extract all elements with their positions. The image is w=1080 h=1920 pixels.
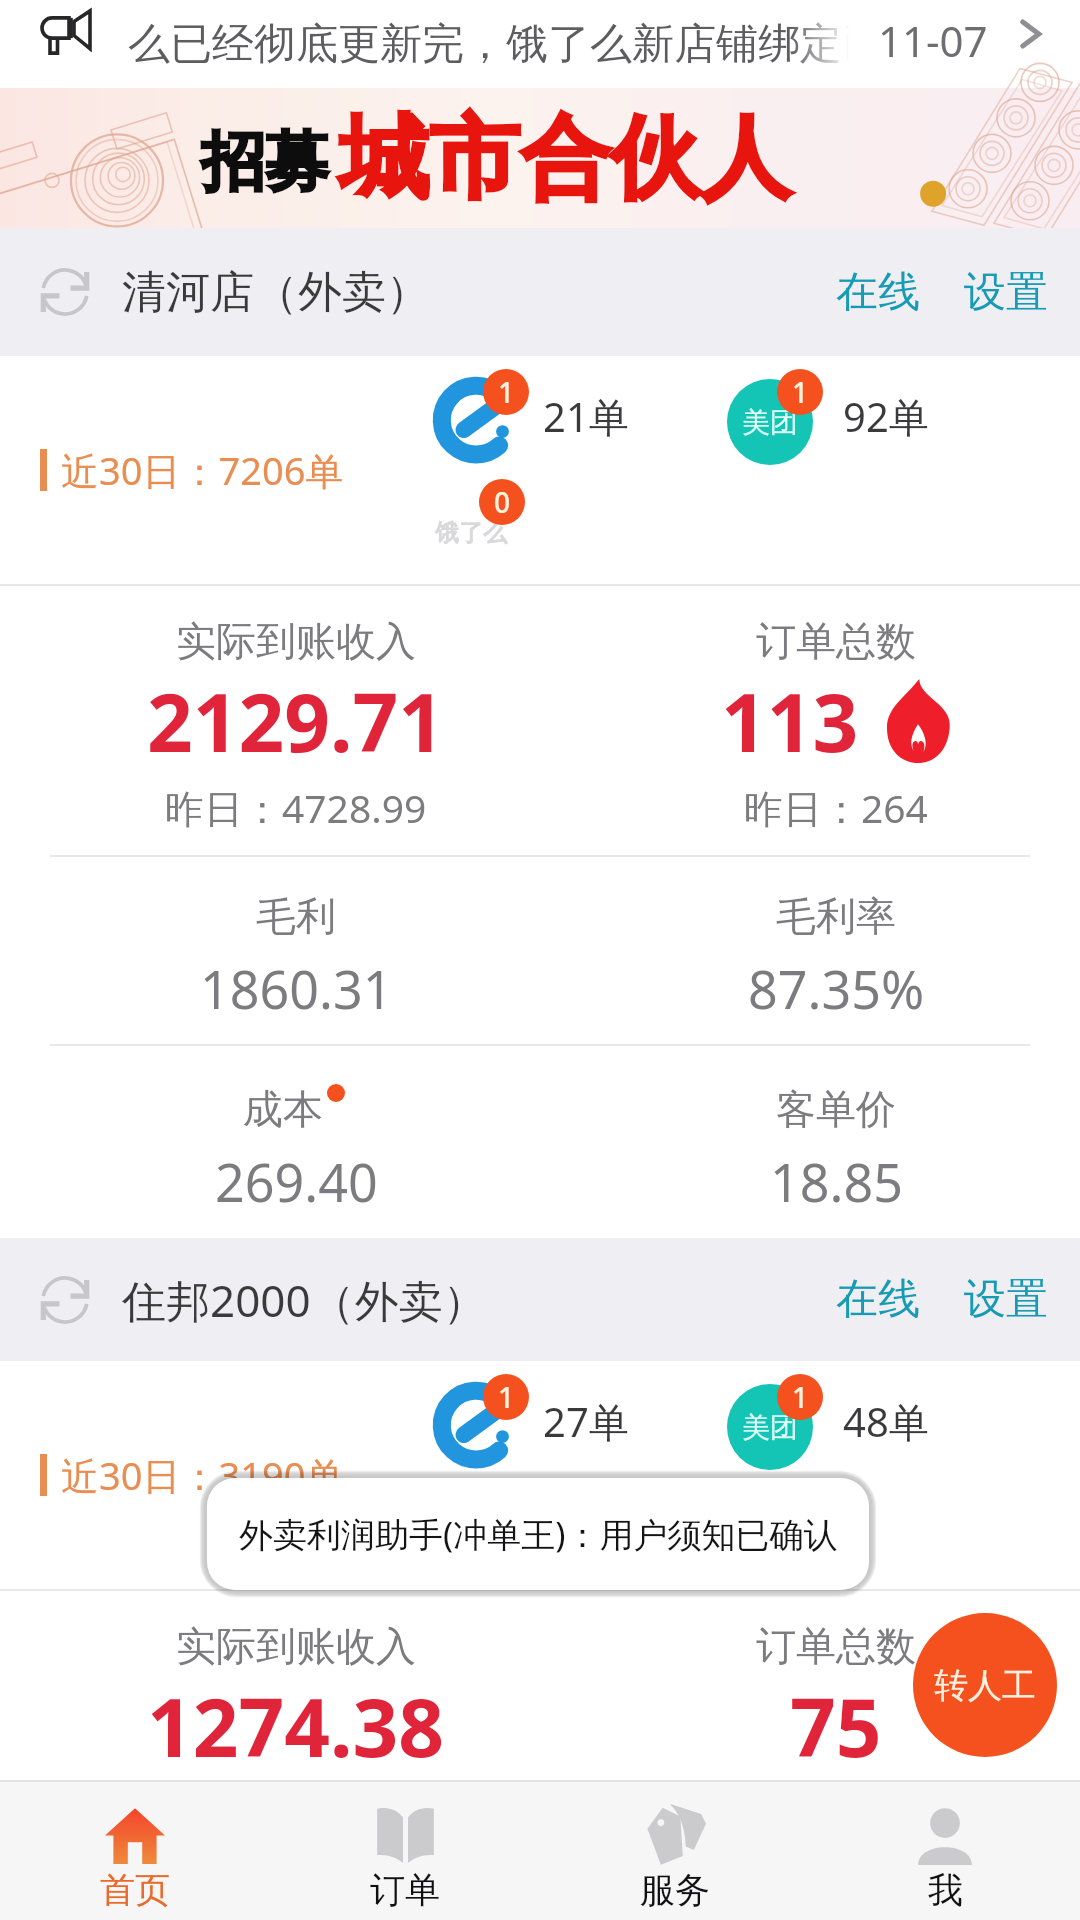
staticText: 订单总数 xyxy=(756,616,916,666)
staticText: 87.35% xyxy=(748,953,925,1024)
staticText: 近30日：7206单 xyxy=(61,444,344,496)
staticText: 么已经彻底更新完，饿了么新店铺绑定已绑定 xyxy=(128,18,850,71)
staticText: 首页 xyxy=(100,1868,170,1912)
staticText: 毛利率 xyxy=(776,891,896,941)
staticText: 269.40 xyxy=(215,1146,378,1217)
staticText: 美团 xyxy=(742,1410,798,1445)
staticText: 近30日：3190单 xyxy=(61,1449,344,1501)
staticText: 外卖利润助手(冲单王)：用户须知已确认 xyxy=(239,1511,838,1557)
staticText: 21单 xyxy=(543,389,629,444)
button[interactable]: Profile xyxy=(810,1782,1080,1920)
staticText: 实际到账收入 xyxy=(176,616,416,666)
staticText: 城市合伙人 xyxy=(339,102,792,215)
staticText: 美团 xyxy=(742,405,798,440)
staticText: 48单 xyxy=(843,1394,929,1449)
button[interactable]: 设置 xyxy=(958,258,1054,327)
staticText: 113 xyxy=(721,666,859,775)
staticText: 饿了么 xyxy=(435,518,507,548)
button[interactable]: 么已经彻底更新完，饿了么新店铺绑定已绑定 xyxy=(0,0,1080,88)
staticText: 订单总数 xyxy=(756,1621,916,1671)
staticText: 在线 xyxy=(836,1273,920,1326)
staticText: 毛利 xyxy=(256,891,336,941)
staticText: 92单 xyxy=(843,389,929,444)
staticText: 75 xyxy=(790,1671,882,1780)
button[interactable]: 招募 xyxy=(0,88,1080,228)
staticText: 设置 xyxy=(964,266,1048,319)
other: Open notice xyxy=(1010,14,1050,54)
button[interactable]: Home xyxy=(0,1782,270,1920)
staticText: 实际到账收入 xyxy=(176,1621,416,1671)
staticText: 1 xyxy=(498,1378,515,1416)
staticText: 1860.31 xyxy=(200,953,393,1024)
button[interactable]: 设置 xyxy=(958,1265,1054,1334)
staticText: 饿了么 xyxy=(435,1523,507,1553)
staticText: 昨日：4728.99 xyxy=(165,781,427,834)
staticText: 设置 xyxy=(964,1273,1048,1326)
staticText: 清河店（外卖） xyxy=(122,265,430,320)
staticText: 我 xyxy=(928,1868,963,1912)
staticText: 客单价 xyxy=(776,1084,896,1134)
staticText: 27单 xyxy=(543,1394,629,1449)
staticText: 1274.38 xyxy=(147,1671,445,1780)
button[interactable]: 清河店（外卖） xyxy=(0,228,1080,356)
staticText: 转人工 xyxy=(934,1664,1036,1707)
staticText: 住邦2000（外卖） xyxy=(122,1270,487,1330)
staticText: 在线 xyxy=(836,266,920,319)
staticText: 11-07 xyxy=(878,12,988,69)
staticText: 2129.71 xyxy=(147,666,445,775)
staticText: 1 xyxy=(498,373,515,411)
button[interactable]: Services xyxy=(540,1782,810,1920)
staticText: 0 xyxy=(494,483,511,521)
button[interactable]: 在线 xyxy=(830,258,926,327)
staticText: 1 xyxy=(792,373,809,411)
staticText: 服务 xyxy=(640,1868,710,1912)
staticText: 招募 xyxy=(201,122,329,203)
button[interactable]: 住邦2000（外卖） xyxy=(0,1238,1080,1361)
button[interactable]: 转人工 xyxy=(913,1613,1057,1757)
button[interactable]: 在线 xyxy=(830,1265,926,1334)
staticText: 昨日：264 xyxy=(744,781,928,834)
button[interactable]: Orders xyxy=(270,1782,540,1920)
staticText: 订单 xyxy=(370,1868,440,1912)
staticText: 1 xyxy=(792,1378,809,1416)
staticText: 18.85 xyxy=(770,1146,903,1217)
staticText: 0 xyxy=(494,1488,511,1526)
staticText: 成本 xyxy=(243,1084,323,1134)
